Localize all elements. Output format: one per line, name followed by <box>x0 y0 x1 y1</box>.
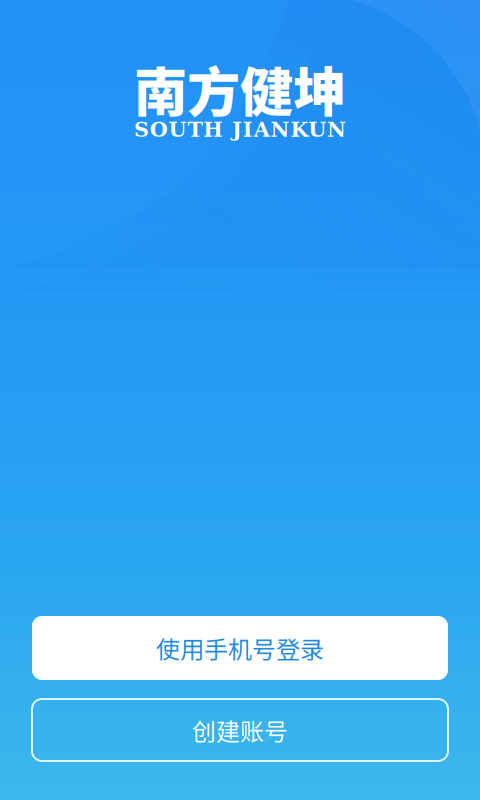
staticText: 创建账号 <box>192 713 288 747</box>
button[interactable]: 使用手机号登录 <box>32 616 448 680</box>
staticText: SOUTH JIANKUN <box>134 117 346 141</box>
button[interactable]: 创建账号 <box>32 699 448 761</box>
staticText: 使用手机号登录 <box>156 631 324 665</box>
staticText: 南方健坤 <box>134 50 346 127</box>
